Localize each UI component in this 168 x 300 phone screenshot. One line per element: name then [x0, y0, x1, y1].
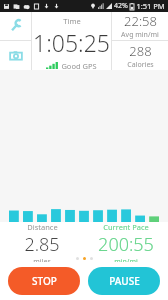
- staticText: 1:51 PM: [136, 1, 165, 11]
- staticText: Avg min/mi: [121, 30, 159, 40]
- button[interactable]: 22:58: [112, 12, 168, 40]
- button[interactable]: Current Pace: [84, 222, 168, 262]
- staticText: 288: [129, 42, 152, 60]
- button[interactable]: Time: [32, 12, 111, 70]
- button[interactable]: Settings: [0, 12, 31, 40]
- button[interactable]: Distance: [0, 222, 84, 262]
- staticText: miles: [33, 257, 51, 262]
- staticText: Calories: [127, 60, 154, 70]
- staticText: STOP: [32, 274, 57, 288]
- staticText: 22:58: [124, 12, 157, 30]
- staticText: Time: [63, 16, 81, 26]
- button[interactable]: STOP: [8, 267, 80, 295]
- staticText: Distance: [27, 222, 58, 232]
- staticText: 200:55: [98, 232, 154, 257]
- staticText: PAUSE: [109, 274, 140, 288]
- staticText: min/mi: [114, 257, 138, 262]
- button[interactable]: PAUSE: [88, 267, 160, 295]
- staticText: Good GPS: [61, 61, 97, 70]
- staticText: Current Pace: [103, 222, 149, 232]
- staticText: 1:05:25: [33, 27, 110, 58]
- staticText: 42%: [114, 1, 128, 11]
- button[interactable]: 288: [112, 41, 168, 70]
- staticText: 2.85: [24, 232, 60, 257]
- button[interactable]: Camera: [0, 41, 31, 70]
